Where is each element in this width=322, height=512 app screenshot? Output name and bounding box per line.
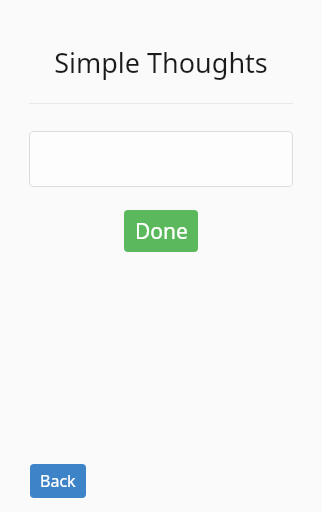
button[interactable] [29, 131, 293, 187]
staticText: Done [135, 217, 188, 246]
button[interactable]: Done [124, 210, 198, 252]
staticText: Simple Thoughts [0, 44, 322, 81]
button[interactable]: Back [30, 464, 86, 498]
staticText: Back [40, 470, 76, 492]
